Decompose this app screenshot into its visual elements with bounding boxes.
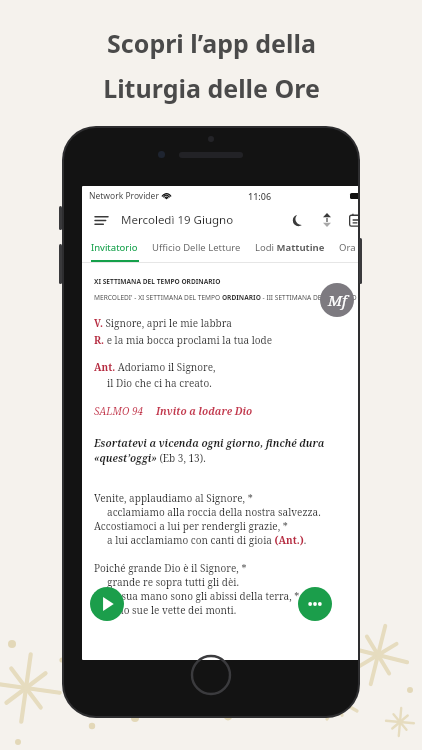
staticText: SALMO 94 Invito a lodare Dio (94, 404, 253, 418)
button[interactable]: Invitatorio (91, 235, 138, 260)
staticText: Mf (328, 290, 347, 310)
button[interactable]: Text size (316, 209, 338, 231)
staticText: il Dio che ci ha creato. (94, 376, 212, 390)
staticText: Lodi Mattutine (255, 241, 325, 254)
button[interactable]: Night mode (287, 209, 309, 231)
staticText: a lui acclamiamo con canti di gioia (Ant… (94, 533, 307, 547)
staticText: Mercoledì 19 Giugno (121, 212, 234, 228)
staticText: Network Provider (89, 190, 159, 202)
button[interactable]: Mf (320, 283, 354, 317)
button[interactable]: More options (298, 587, 332, 621)
staticText: 11:06 (248, 190, 272, 202)
staticText: Scopri l’app della (107, 26, 316, 60)
staticText: Ant. Adoriamo il Signore, (94, 360, 216, 374)
button[interactable]: Play (90, 587, 124, 621)
staticText: V. Signore, apri le mie labbra (94, 316, 232, 330)
staticText: Poiché grande Dio è il Signore, * (94, 561, 247, 575)
staticText: Accostiamoci a lui per rendergli grazie,… (94, 519, 288, 533)
button[interactable]: Ora (339, 235, 356, 260)
button[interactable]: Ufficio Delle Letture (152, 235, 241, 260)
button[interactable]: Calendar (345, 209, 358, 231)
staticText: Ufficio Delle Letture (152, 241, 241, 254)
staticText: acclamiamo alla roccia della nostra salv… (94, 505, 321, 519)
staticText: Venite, applaudiamo al Signore, * (94, 491, 253, 505)
staticText: Ora (339, 241, 356, 254)
staticText: R. e la mia bocca proclami la tua lode (94, 333, 273, 347)
staticText: sono sue le vette dei monti. (94, 603, 237, 617)
button[interactable]: Menu (91, 210, 111, 230)
staticText: XI SETTIMANA DEL TEMPO ORDINARIO (94, 277, 221, 286)
staticText: MERCOLEDI' - XI SETTIMANA DEL TEMPO ORDI… (94, 293, 357, 302)
button[interactable]: Lodi Mattutine (255, 235, 325, 260)
staticText: grande re sopra tutti gli dèi. (94, 575, 240, 589)
staticText: Liturgia delle Ore (103, 71, 320, 105)
staticText: Invitatorio (91, 241, 138, 254)
staticText: Esortatevi a vicenda ogni giorno, finché… (94, 436, 358, 465)
staticText: Nella sua mano sono gli abissi della ter… (94, 589, 300, 603)
